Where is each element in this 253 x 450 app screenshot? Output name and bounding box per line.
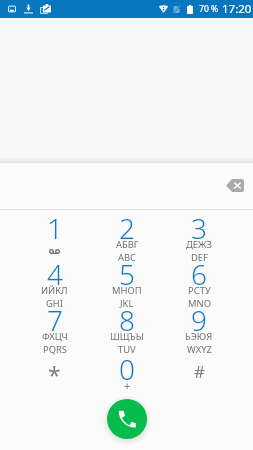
staticText: TUV xyxy=(118,343,136,356)
staticText: ФХЦЧ xyxy=(42,330,68,343)
button[interactable]: 7 xyxy=(18,302,91,348)
button[interactable]: 4 xyxy=(18,256,91,302)
staticText: GHI xyxy=(46,297,63,310)
staticText: АБВГ xyxy=(116,238,139,251)
staticText: 8 xyxy=(119,301,135,339)
staticText: 2 xyxy=(119,209,135,247)
button[interactable]: 6 xyxy=(163,256,235,302)
staticText: 9 xyxy=(191,301,207,339)
staticText: 5 xyxy=(119,255,135,293)
button[interactable]: 2 xyxy=(91,210,163,256)
button[interactable]: 3 xyxy=(163,210,235,256)
staticText: * xyxy=(48,359,61,390)
staticText: 0 xyxy=(119,350,135,388)
staticText: # xyxy=(194,360,205,383)
staticText: МНОП xyxy=(112,284,142,297)
staticText: 70 % xyxy=(199,3,219,15)
button[interactable]: Backspace xyxy=(220,170,250,200)
staticText: ИЙКЛ xyxy=(41,284,68,297)
staticText: ЬЭЮЯ xyxy=(185,330,213,343)
staticText: ШЩЪЫ xyxy=(110,330,144,343)
staticText: 7 xyxy=(47,301,63,339)
staticText: 3 xyxy=(191,209,207,247)
staticText: 17:20 xyxy=(222,1,252,17)
button[interactable]: 9 xyxy=(163,302,235,348)
staticText: DEF xyxy=(191,251,208,264)
staticText: РСТУ xyxy=(188,284,211,297)
button[interactable]: Call xyxy=(107,399,147,439)
staticText: WXYZ xyxy=(187,343,212,356)
staticText: PQRS xyxy=(43,343,68,356)
staticText: JKL xyxy=(120,297,134,310)
button[interactable]: 5 xyxy=(91,256,163,302)
staticText: + xyxy=(124,378,131,393)
staticText: ДЕЖЗ xyxy=(186,238,212,251)
staticText: 1 xyxy=(47,209,63,247)
staticText: MNO xyxy=(188,297,211,310)
staticText: ABC xyxy=(118,251,137,264)
button[interactable]: * xyxy=(18,348,91,393)
button[interactable]: 0 xyxy=(91,348,163,393)
staticText: 4 xyxy=(47,255,63,293)
staticText: 6 xyxy=(191,255,207,293)
button[interactable]: # xyxy=(163,348,235,393)
button[interactable]: 8 xyxy=(91,302,163,348)
button[interactable]: 1 xyxy=(18,210,91,256)
